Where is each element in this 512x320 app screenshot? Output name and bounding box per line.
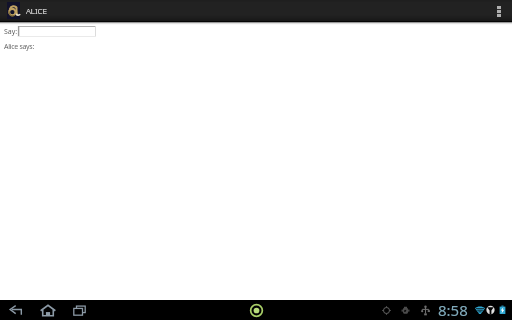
staticText: Alice says: xyxy=(4,42,34,52)
button[interactable]: More options xyxy=(488,0,510,21)
staticText: Say: xyxy=(4,27,18,37)
staticText: ALICE xyxy=(26,5,47,16)
button[interactable]: Recent apps xyxy=(66,300,92,320)
button[interactable]: Status and notifications xyxy=(378,300,512,320)
button[interactable]: Home xyxy=(35,300,61,320)
button[interactable] xyxy=(18,26,96,37)
staticText: 8:58 xyxy=(438,300,468,320)
button[interactable]: Notification xyxy=(246,300,266,320)
button[interactable]: Back xyxy=(3,300,29,320)
